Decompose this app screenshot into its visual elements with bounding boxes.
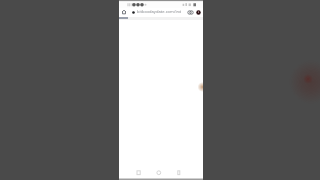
button[interactable]: Account xyxy=(194,8,202,16)
button[interactable]: Recent apps xyxy=(175,167,203,178)
button[interactable]: bitboxdaydate.com/index.html xyxy=(128,8,187,16)
button[interactable]: Home xyxy=(147,167,175,178)
staticText: bitboxdaydate.com/index.html xyxy=(137,9,181,15)
button[interactable]: Back xyxy=(119,167,147,178)
button[interactable]: Home xyxy=(120,8,128,16)
button[interactable]: Switch tabs xyxy=(187,8,194,16)
